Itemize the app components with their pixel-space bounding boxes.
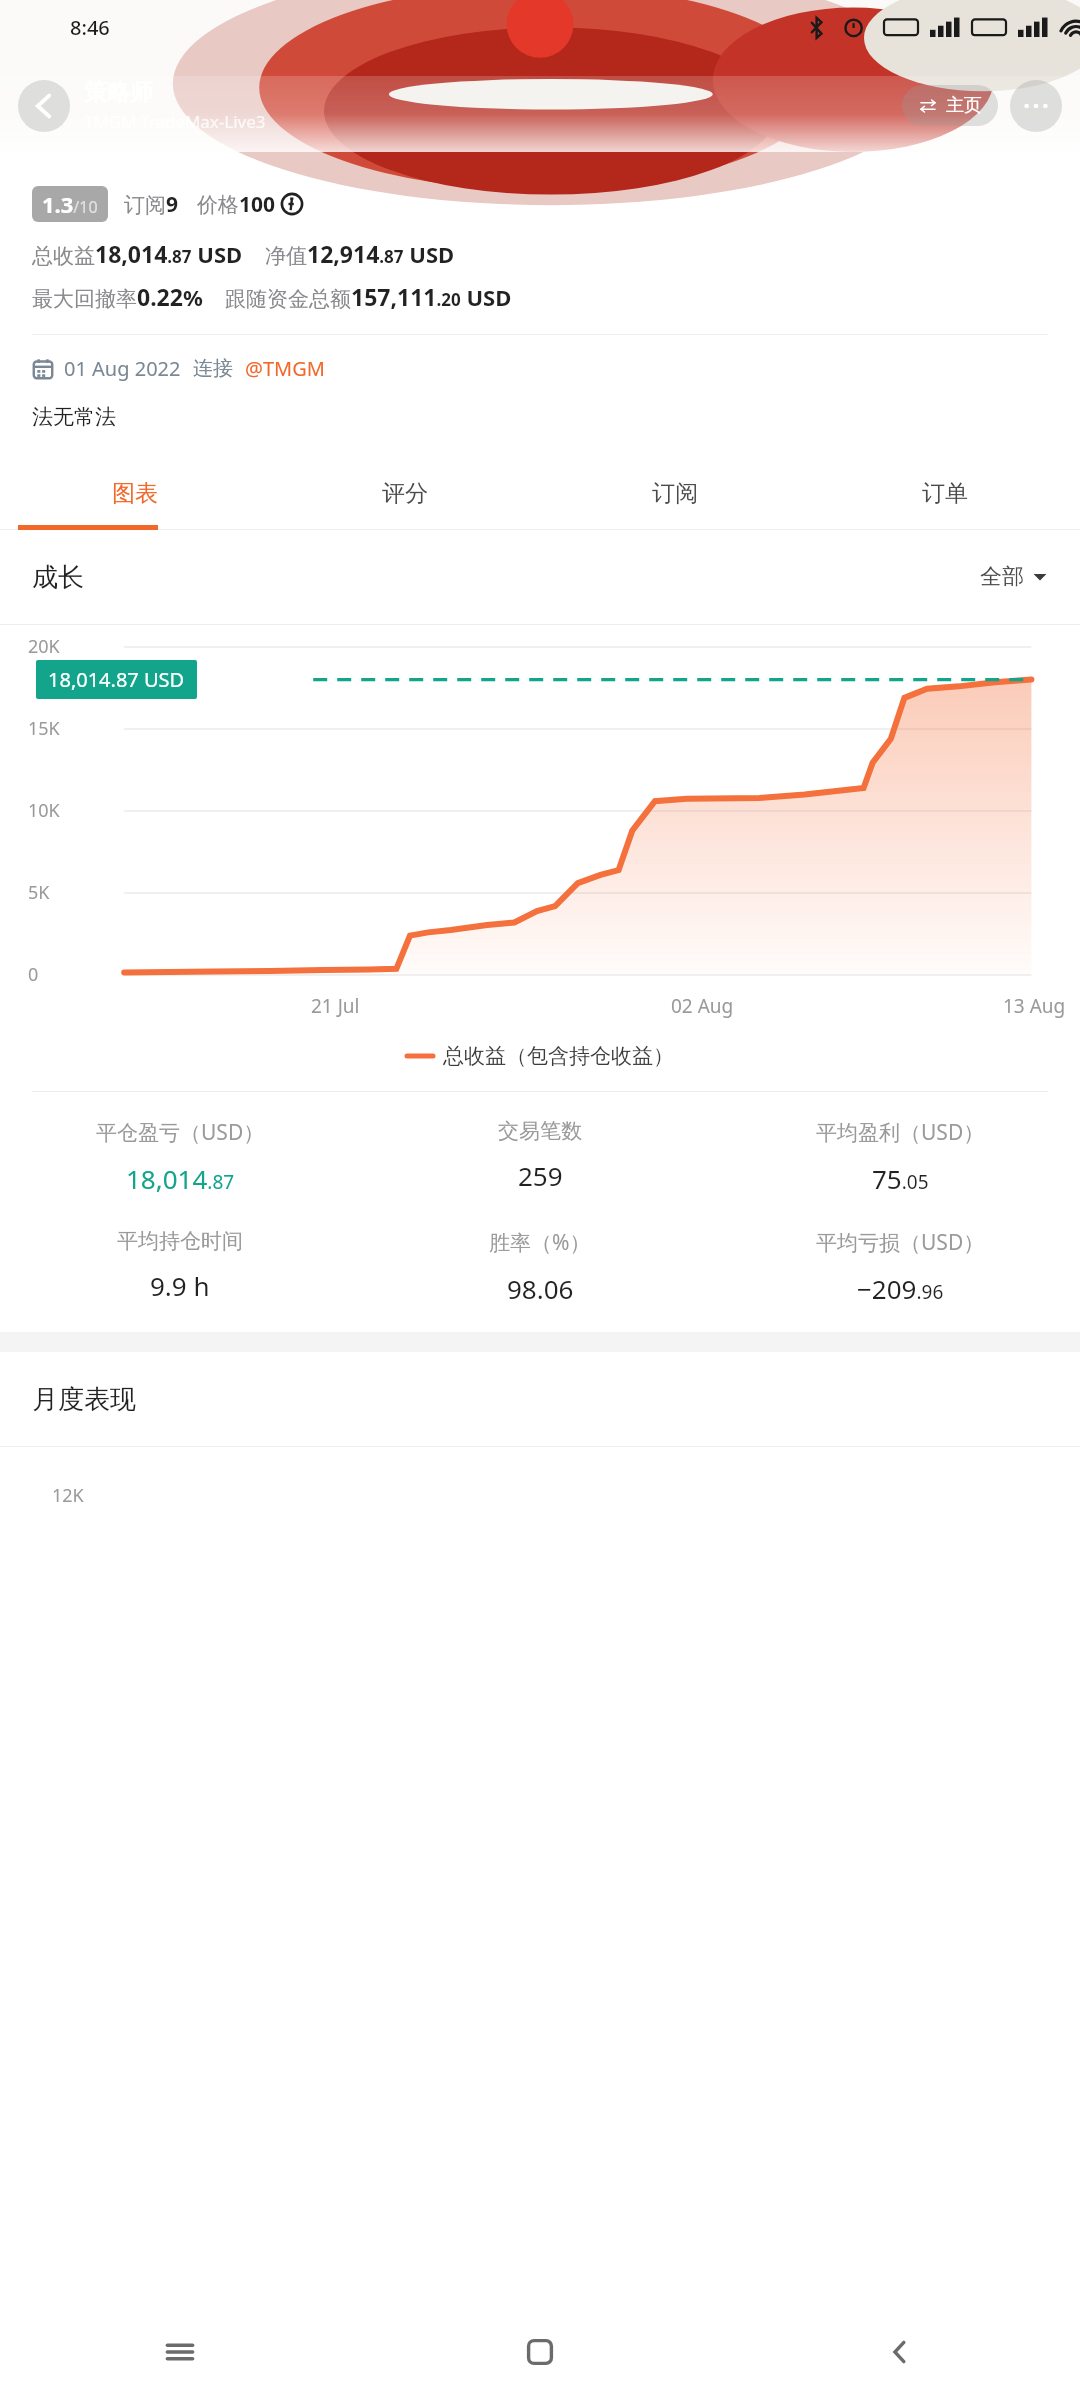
staticText: 1.3/10: [42, 189, 98, 219]
staticText: 98.06: [507, 1271, 574, 1306]
button[interactable]: 全部: [980, 563, 1048, 591]
staticText: 0: [28, 962, 39, 987]
button[interactable]: Home: [360, 2304, 720, 2400]
staticText: −209.96: [857, 1271, 944, 1306]
staticText: 21 Jul: [311, 993, 360, 1019]
staticText: 全部: [980, 563, 1024, 591]
button[interactable]: @TMGM: [245, 355, 325, 382]
staticText: 价格100: [197, 190, 276, 219]
staticText: @TMGM: [245, 355, 325, 382]
button[interactable]: 主页: [902, 85, 998, 126]
staticText: 成长: [32, 561, 84, 594]
staticText: 总收益（包含持仓收益）: [443, 1043, 674, 1069]
staticText: 胜率（%）: [489, 1228, 591, 1257]
button[interactable]: Back: [18, 80, 70, 132]
button[interactable]: 订单: [810, 456, 1080, 530]
staticText: 平均亏损（USD）: [816, 1228, 985, 1257]
staticText: 交易笔数: [498, 1118, 582, 1144]
staticText: 最大回撤率0.22%: [32, 281, 203, 312]
staticText: 订阅: [652, 479, 698, 508]
staticText: 评分: [382, 479, 428, 508]
staticText: 图表: [112, 479, 158, 508]
staticText: 5K: [28, 880, 50, 905]
staticText: 75.05: [872, 1161, 929, 1196]
staticText: 259: [518, 1158, 563, 1193]
button[interactable]: Recents: [0, 2304, 360, 2400]
staticText: 01 Aug 2022: [64, 355, 181, 382]
staticText: 20K: [28, 634, 60, 659]
button[interactable]: Back: [720, 2304, 1080, 2400]
staticText: 订阅9: [124, 190, 179, 219]
button[interactable]: More options: [1010, 80, 1062, 132]
staticText: 净值12,914.87 USD: [265, 238, 455, 269]
staticText: 10K: [28, 798, 60, 823]
staticText: 跟随资金总额157,111.20 USD: [225, 281, 512, 312]
staticText: 平仓盈亏（USD）: [96, 1118, 265, 1147]
staticText: 02 Aug: [671, 993, 734, 1019]
staticText: 连接: [193, 356, 233, 381]
staticText: 8:46: [70, 14, 110, 41]
staticText: 订单: [922, 479, 968, 508]
staticText: 总收益18,014.87 USD: [32, 238, 243, 269]
staticText: 15K: [28, 716, 60, 741]
staticText: TMGM.TradeMax-Live3: [84, 110, 266, 133]
staticText: 平均盈利（USD）: [816, 1118, 985, 1147]
staticText: 月度表现: [32, 1383, 136, 1416]
staticText: 9.9 h: [150, 1268, 210, 1303]
staticText: 主页: [946, 94, 982, 117]
staticText: 平均持仓时间: [117, 1228, 243, 1254]
staticText: 法无常法: [32, 404, 116, 430]
button[interactable]: 图表: [0, 456, 270, 530]
button[interactable]: 订阅: [540, 456, 810, 530]
staticText: 18,014.87: [126, 1161, 235, 1196]
button[interactable]: 评分: [270, 456, 540, 530]
staticText: 13 Aug: [1003, 993, 1066, 1019]
staticText: 18,014.87 USD: [48, 666, 185, 693]
staticText: 12K: [52, 1483, 84, 1508]
